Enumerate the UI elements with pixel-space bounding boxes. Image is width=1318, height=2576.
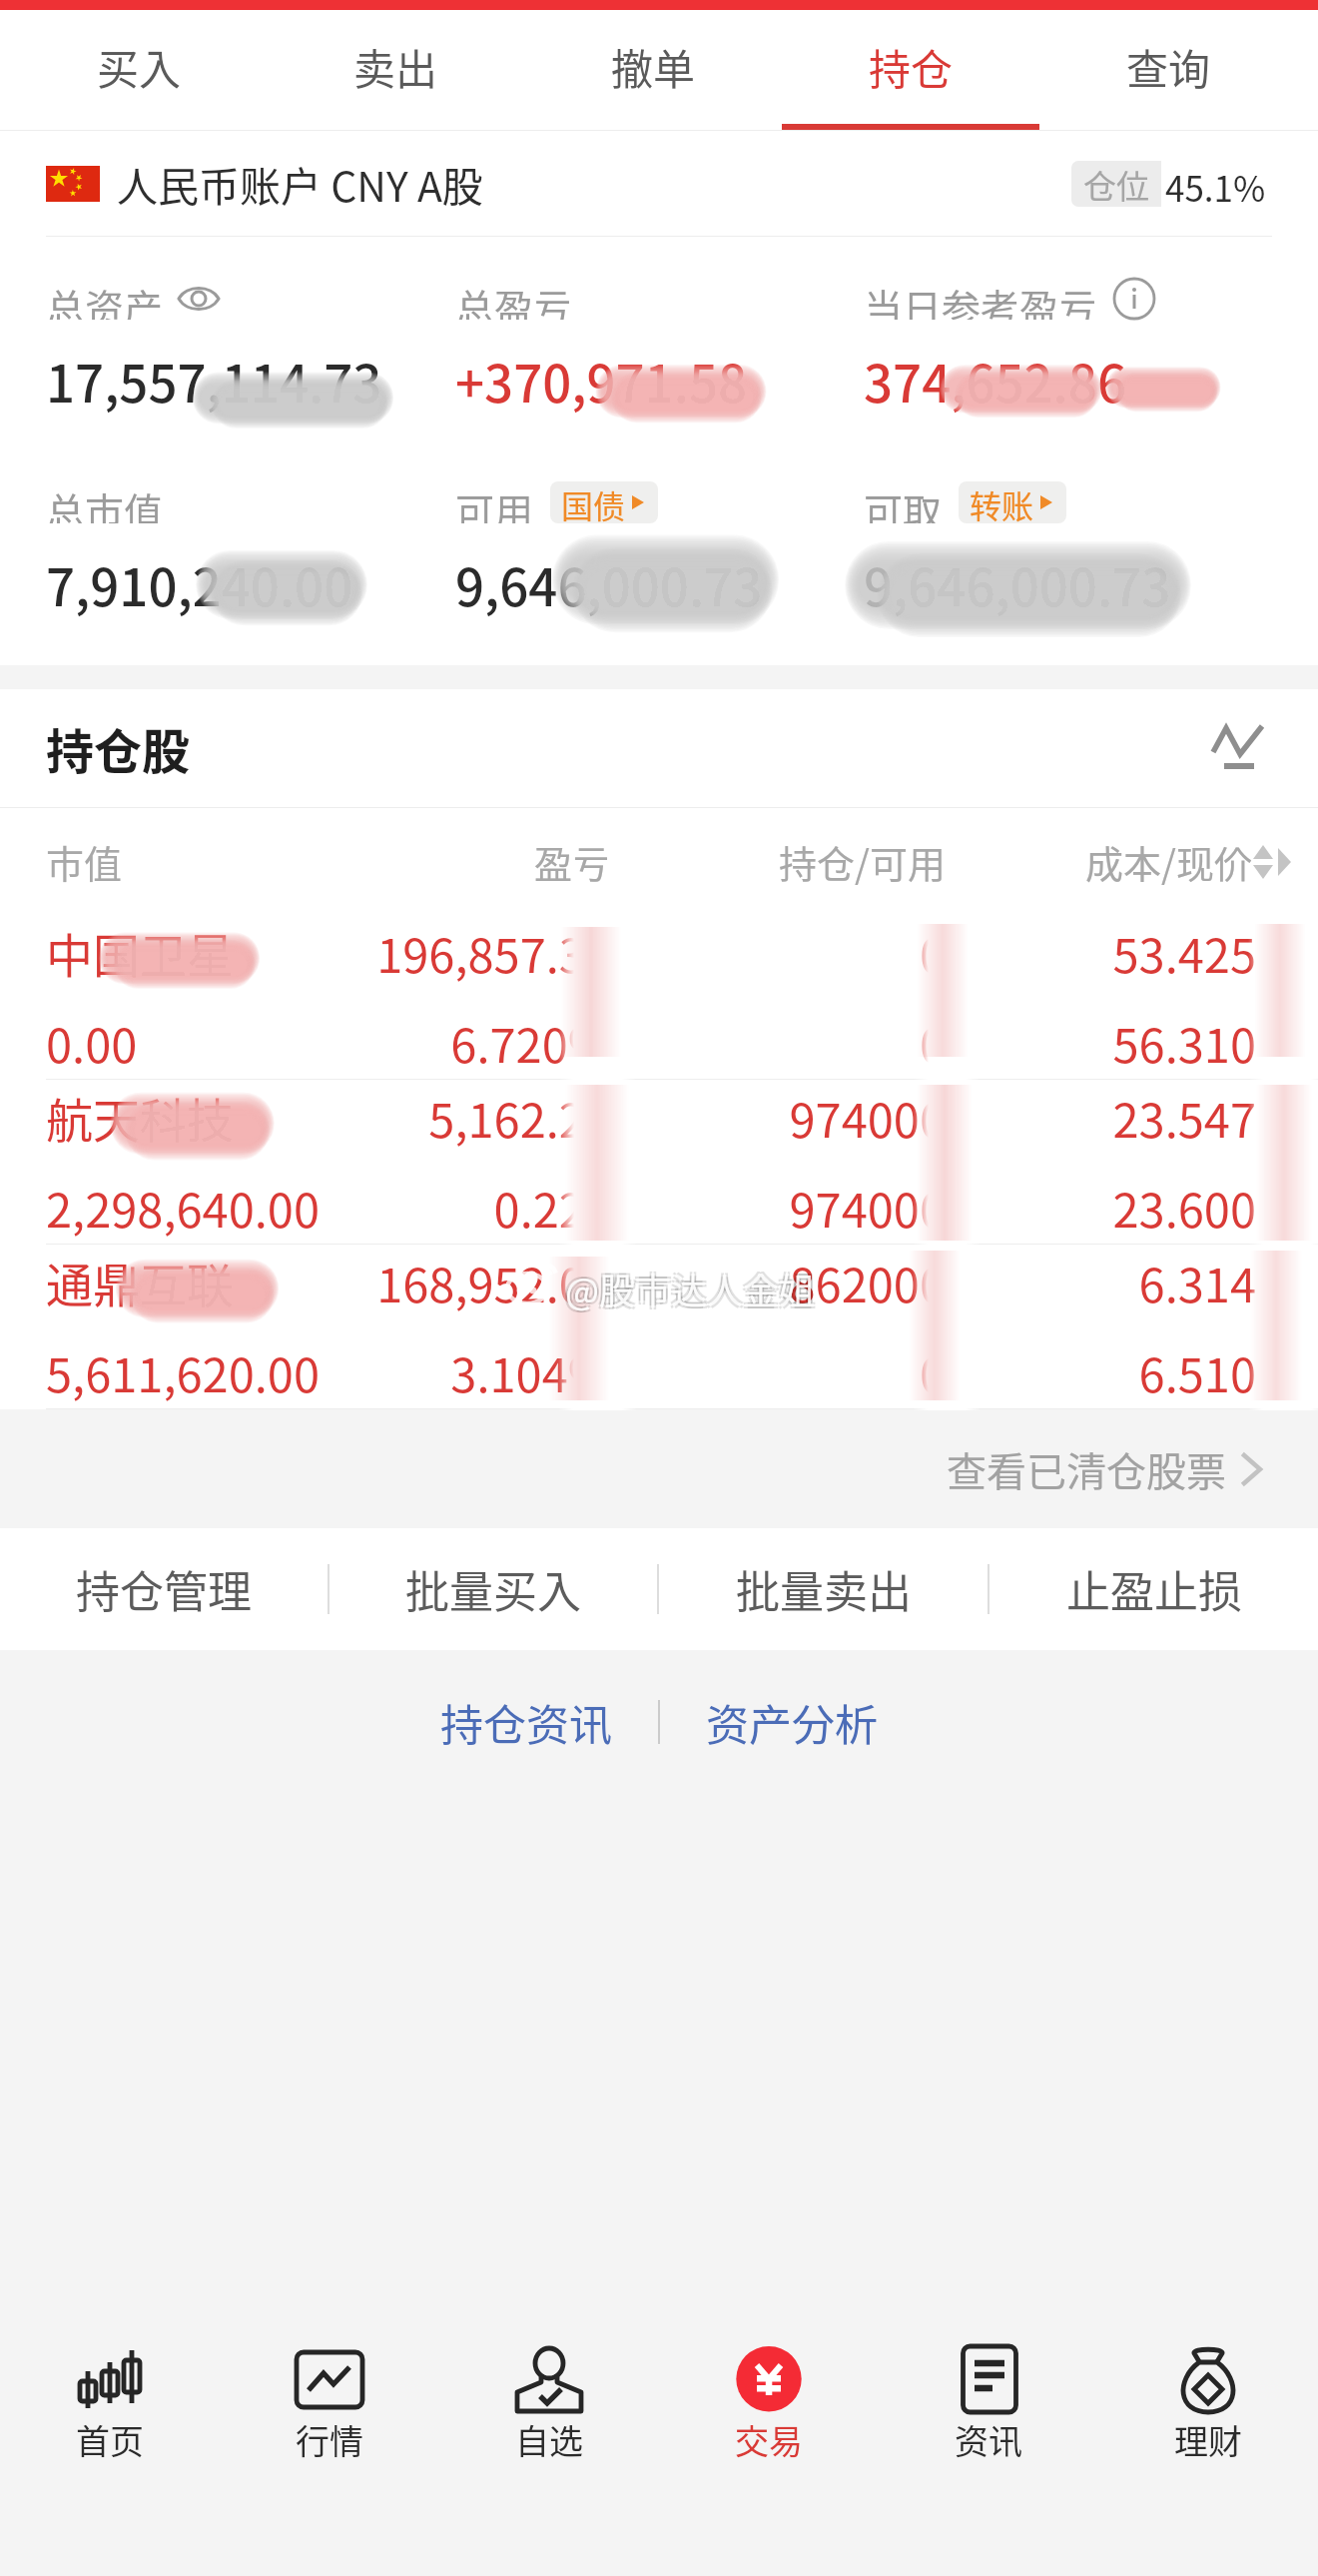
staticText: 17,557,114.73 bbox=[46, 344, 382, 418]
staticText: 批量买入 bbox=[405, 1557, 581, 1621]
staticText: 理财 bbox=[1174, 2415, 1242, 2464]
button[interactable]: 资讯 bbox=[879, 2316, 1098, 2576]
staticText: 0.225 bbox=[359, 1173, 611, 1241]
staticText: 查看已清仓股票 bbox=[947, 1440, 1226, 1498]
button[interactable]: 航天科技 bbox=[0, 1080, 1318, 1245]
staticText: @股市达人金姐 bbox=[565, 1263, 816, 1314]
staticText: 168,952.00 bbox=[359, 1248, 611, 1315]
staticText: 人民币账户 CNY A股 bbox=[117, 154, 483, 213]
staticText: 56.310 bbox=[946, 1008, 1256, 1076]
button[interactable]: 人民币账户 CNY A股 bbox=[46, 131, 1272, 236]
staticText: 974000 bbox=[611, 1083, 946, 1151]
staticText: 首页 bbox=[76, 2415, 144, 2464]
staticText: 23.600 bbox=[946, 1173, 1256, 1241]
staticText: 6.510 bbox=[946, 1337, 1256, 1405]
staticText: 3.104% bbox=[359, 1337, 611, 1405]
staticText: 7,910,240.00 bbox=[46, 547, 353, 621]
button[interactable]: 国债 bbox=[561, 481, 647, 523]
button[interactable]: 持仓 bbox=[782, 10, 1039, 131]
staticText: 可取 bbox=[864, 481, 943, 523]
button[interactable]: 批量买入 bbox=[329, 1528, 657, 1650]
button[interactable]: 批量卖出 bbox=[659, 1528, 988, 1650]
staticText: 可用 bbox=[455, 481, 534, 523]
staticText: 仓位 bbox=[1083, 161, 1149, 207]
staticText: 0 bbox=[611, 1008, 946, 1076]
staticText: 航天科技 bbox=[46, 1083, 359, 1151]
button[interactable]: 卖出 bbox=[268, 10, 524, 131]
staticText: +370,971.58 bbox=[455, 344, 748, 418]
staticText: 5,162.25 bbox=[359, 1083, 611, 1151]
staticText: 成本/现价 bbox=[1085, 834, 1252, 889]
staticText: 行情 bbox=[296, 2415, 363, 2464]
staticText: 总资产 bbox=[46, 278, 164, 320]
staticText: 持仓/可用 bbox=[779, 834, 946, 889]
staticText: 974000 bbox=[611, 1173, 946, 1241]
staticText: 查询 bbox=[1126, 36, 1211, 97]
staticText: @股市达人金姐 bbox=[567, 1261, 818, 1312]
staticText: 862000 bbox=[611, 1248, 946, 1315]
staticText: 总市值 bbox=[46, 481, 164, 523]
staticText: 通鼎互联 bbox=[46, 1248, 359, 1315]
button[interactable]: 交易 bbox=[659, 2316, 879, 2576]
staticText: 市值 bbox=[46, 834, 123, 889]
staticText: 6.720% bbox=[359, 1008, 611, 1076]
button[interactable]: 理财 bbox=[1098, 2316, 1318, 2576]
button[interactable]: 买入 bbox=[11, 10, 268, 131]
button[interactable]: 行情 bbox=[220, 2316, 439, 2576]
staticText: 持仓 bbox=[869, 36, 954, 97]
staticText: 23.547 bbox=[946, 1083, 1256, 1151]
button[interactable]: 查看已清仓股票 bbox=[947, 1440, 1266, 1498]
staticText: 0 bbox=[611, 918, 946, 986]
staticText: 45.1% bbox=[1165, 161, 1266, 207]
staticText: 资产分析 bbox=[706, 1691, 878, 1753]
staticText: 2,298,640.00 bbox=[46, 1173, 359, 1241]
staticText: 当日参考盈亏 bbox=[864, 278, 1098, 320]
button[interactable]: 持仓管理 bbox=[0, 1528, 328, 1650]
staticText: 撤单 bbox=[611, 36, 696, 97]
staticText: 6.314 bbox=[946, 1248, 1256, 1315]
staticText: 交易 bbox=[735, 2415, 803, 2464]
staticText: 0.00 bbox=[46, 1008, 359, 1076]
button[interactable]: 首页 bbox=[0, 2316, 220, 2576]
staticText: 持仓资讯 bbox=[440, 1691, 612, 1753]
button[interactable]: 持仓资讯 bbox=[420, 1683, 658, 1761]
staticText: 0 bbox=[611, 1337, 946, 1405]
button[interactable]: 止盈止损 bbox=[989, 1528, 1318, 1650]
staticText: 9,646,000.73 bbox=[864, 547, 1171, 621]
staticText: 持仓管理 bbox=[76, 1557, 252, 1621]
staticText: 374,652.86 bbox=[864, 344, 1126, 418]
button[interactable]: 查询 bbox=[1039, 10, 1297, 131]
staticText: 中国卫星 bbox=[46, 918, 359, 986]
button[interactable]: 走势图 bbox=[1206, 715, 1272, 781]
button[interactable]: 资产分析 bbox=[660, 1683, 898, 1761]
button[interactable]: 通鼎互联 bbox=[0, 1245, 1318, 1409]
staticText: 196,857.38 bbox=[359, 918, 611, 986]
staticText: 转账 bbox=[970, 481, 1034, 523]
staticText: 5,611,620.00 bbox=[46, 1337, 359, 1405]
staticText: 批量卖出 bbox=[736, 1557, 912, 1621]
staticText: 53.425 bbox=[946, 918, 1256, 986]
button[interactable]: 中国卫星 bbox=[0, 915, 1318, 1080]
button[interactable]: 自选 bbox=[439, 2316, 659, 2576]
staticText: @股市达人金姐 bbox=[567, 1265, 818, 1316]
staticText: @股市达人金姐 bbox=[563, 1265, 814, 1316]
staticText: 盈亏 bbox=[534, 834, 611, 889]
button[interactable]: 转账 bbox=[970, 481, 1055, 523]
staticText: 止盈止损 bbox=[1066, 1557, 1242, 1621]
staticText: 买入 bbox=[97, 36, 182, 97]
staticText: 卖出 bbox=[353, 36, 438, 97]
staticText: 持仓股 bbox=[46, 713, 191, 783]
staticText: 总盈亏 bbox=[455, 278, 573, 320]
button[interactable]: 撤单 bbox=[524, 10, 782, 131]
staticText: 自选 bbox=[515, 2415, 583, 2464]
staticText: 资讯 bbox=[955, 2415, 1022, 2464]
staticText: 9,646,000.73 bbox=[455, 547, 763, 621]
staticText: 国债 bbox=[561, 481, 626, 523]
staticText: @股市达人金姐 bbox=[563, 1261, 814, 1312]
button[interactable]: 仓位 bbox=[1071, 161, 1272, 207]
